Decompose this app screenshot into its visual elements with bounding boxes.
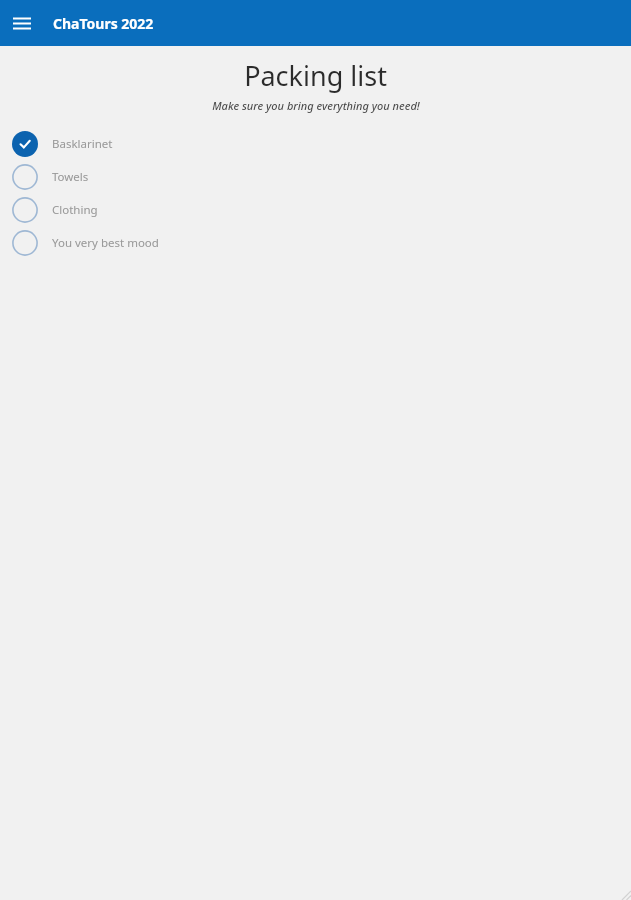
button[interactable]: You very best mood <box>0 226 631 259</box>
staticText: Make sure you bring everything you need! <box>212 98 420 113</box>
button[interactable]: Basklarinet <box>0 127 631 160</box>
staticText: Packing list <box>244 57 387 94</box>
staticText: ChaTours 2022 <box>53 14 154 33</box>
staticText: Basklarinet <box>52 136 113 152</box>
button[interactable]: Open navigation menu <box>9 10 35 36</box>
staticText: You very best mood <box>52 235 159 251</box>
button[interactable]: Clothing <box>0 193 631 226</box>
button[interactable]: Towels <box>0 160 631 193</box>
staticText: Clothing <box>52 202 98 218</box>
staticText: Towels <box>52 169 89 185</box>
